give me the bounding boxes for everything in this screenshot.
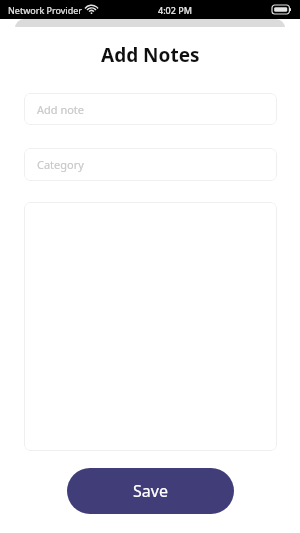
staticText: 4:02 PM <box>158 4 192 16</box>
staticText: Category <box>37 157 84 172</box>
other: Wi-Fi <box>86 5 97 14</box>
staticText: Add note <box>37 102 85 117</box>
button[interactable]: Add note <box>24 93 277 125</box>
staticText: Add Notes <box>101 42 200 68</box>
staticText: Save <box>133 480 168 502</box>
button[interactable]: Save <box>67 468 234 514</box>
staticText: Network Provider <box>8 4 83 16</box>
button[interactable]: Category <box>24 148 277 181</box>
other: Battery <box>272 5 292 14</box>
